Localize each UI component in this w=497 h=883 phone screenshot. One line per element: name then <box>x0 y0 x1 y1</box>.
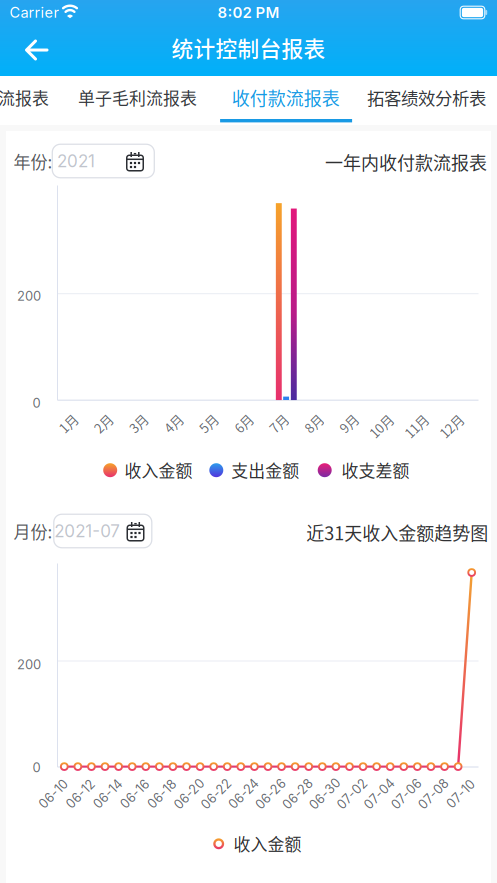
staticText: 10月 <box>368 416 395 435</box>
staticText: 3月 <box>128 414 148 433</box>
staticText: 8:02 PM <box>217 3 279 21</box>
staticText: 06-18 <box>145 786 180 801</box>
staticText: 月份: <box>13 519 52 543</box>
staticText: 收入金额 <box>234 831 302 856</box>
staticText: 收付款流报表 <box>232 84 340 111</box>
staticText: 0 <box>32 760 40 775</box>
button[interactable]: 选择日期 <box>54 514 152 548</box>
staticText: 06-24 <box>226 786 262 801</box>
staticText: 06-28 <box>279 786 316 801</box>
staticText: 12月 <box>438 416 465 435</box>
staticText: 07-06 <box>388 786 425 801</box>
staticText: 4月 <box>163 414 183 433</box>
staticText: 流报表 <box>0 85 49 110</box>
staticText: 200 <box>17 657 41 672</box>
staticText: 06-20 <box>171 786 208 801</box>
staticText: 一年内收付款流报表 <box>325 149 487 175</box>
button[interactable]: 选择日期 <box>52 144 154 178</box>
button[interactable]: 单子毛利流报表 <box>73 73 201 122</box>
staticText: 统计控制台报表 <box>171 32 325 63</box>
staticText: Carrier <box>9 4 58 21</box>
staticText: 收支差额 <box>342 458 410 482</box>
staticText: 06-14 <box>90 786 125 801</box>
staticText: 收入金额 <box>125 458 193 482</box>
staticText: 9月 <box>339 414 359 433</box>
staticText: 07-04 <box>361 786 398 801</box>
staticText: 拓客绩效分析表 <box>367 85 486 110</box>
staticText: 8月 <box>304 414 324 433</box>
staticText: 7月 <box>268 414 288 433</box>
button[interactable]: 拓客绩效分析表 <box>360 73 492 122</box>
staticText: 06-10 <box>36 786 71 801</box>
button[interactable]: Back <box>14 28 58 72</box>
staticText: 07-10 <box>444 786 478 801</box>
staticText: 2月 <box>93 414 113 433</box>
button[interactable]: 流报表 <box>0 73 61 122</box>
staticText: 06-12 <box>63 786 98 801</box>
staticText: 07-08 <box>415 786 452 801</box>
staticText: 1月 <box>58 414 78 433</box>
staticText: 2021-07 <box>54 521 120 541</box>
staticText: 11月 <box>403 416 430 435</box>
staticText: 06-16 <box>117 786 152 801</box>
staticText: 年份: <box>13 149 52 173</box>
staticText: 07-02 <box>334 786 371 801</box>
staticText: 2021 <box>57 151 95 171</box>
button[interactable]: 收付款流报表 <box>222 73 350 122</box>
staticText: 0 <box>32 395 40 411</box>
staticText: 06-30 <box>306 786 344 801</box>
staticText: 6月 <box>233 414 253 433</box>
staticText: 200 <box>17 288 41 304</box>
staticText: 支出金额 <box>231 458 299 482</box>
staticText: 06-22 <box>198 786 235 801</box>
staticText: 单子毛利流报表 <box>78 85 197 110</box>
staticText: 近31天收入金额趋势图 <box>306 519 488 546</box>
staticText: 06-26 <box>252 786 289 801</box>
staticText: 5月 <box>198 414 218 433</box>
